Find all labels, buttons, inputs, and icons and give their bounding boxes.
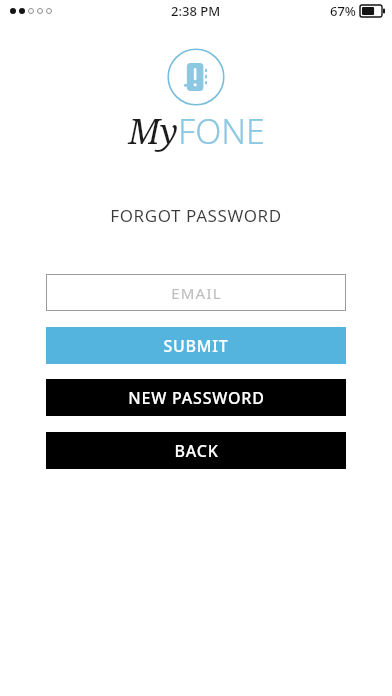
button[interactable]: SUBMIT <box>46 327 346 364</box>
staticText: 2:38 PM <box>171 2 221 20</box>
button[interactable]: NEW PASSWORD <box>46 379 346 416</box>
staticText: FORGOT PASSWORD <box>110 204 282 227</box>
staticText: EMAIL <box>171 283 222 303</box>
staticText: SUBMIT <box>163 335 229 357</box>
button[interactable]: EMAIL <box>46 274 346 311</box>
other: MyFONE logo <box>167 48 225 106</box>
staticText: MyFONE <box>128 108 265 154</box>
staticText: 67% <box>330 2 356 20</box>
staticText: NEW PASSWORD <box>128 387 265 409</box>
button[interactable]: BACK <box>46 432 346 469</box>
staticText: BACK <box>174 440 219 462</box>
